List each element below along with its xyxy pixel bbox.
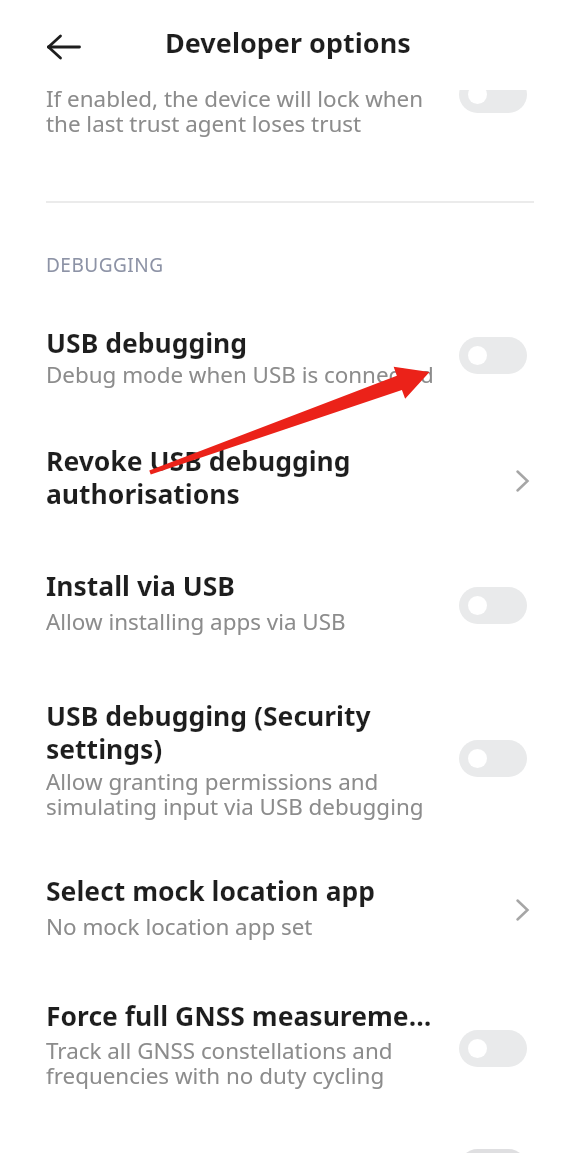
- staticText: If enabled, the device will lock when th…: [46, 83, 424, 139]
- staticText: Install via USB: [46, 568, 235, 604]
- staticText: No mock location app set: [46, 911, 313, 942]
- staticText: DEBUGGING: [46, 252, 164, 278]
- button[interactable]: [459, 587, 527, 624]
- staticText: Track all GNSS constellations and freque…: [46, 1035, 393, 1091]
- button[interactable]: [459, 337, 527, 374]
- button[interactable]: USB debugging: [0, 300, 576, 410]
- button[interactable]: Select mock location app: [0, 850, 576, 960]
- staticText: Select mock location app: [46, 873, 376, 909]
- button[interactable]: [459, 76, 527, 113]
- staticText: Allow installing apps via USB: [46, 606, 346, 637]
- staticText: Debug mode when USB is connected: [46, 359, 434, 390]
- button[interactable]: [459, 1030, 527, 1067]
- button[interactable]: [47, 34, 81, 60]
- button[interactable]: [459, 740, 527, 777]
- staticText: Allow granting permissions and simulatin…: [46, 766, 424, 822]
- button[interactable]: Revoke USB debugging authorisations: [0, 420, 576, 545]
- staticText: Force full GNSS measureme…: [46, 998, 432, 1034]
- button[interactable]: Force full GNSS measureme…: [0, 975, 576, 1110]
- staticText: Developer options: [165, 24, 411, 61]
- staticText: USB debugging: [46, 325, 248, 361]
- button[interactable]: Install via USB: [0, 545, 576, 655]
- staticText: USB debugging (Security settings): [46, 698, 371, 767]
- staticText: Revoke USB debugging authorisations: [46, 443, 351, 512]
- button[interactable]: USB debugging (Security settings): [0, 675, 576, 840]
